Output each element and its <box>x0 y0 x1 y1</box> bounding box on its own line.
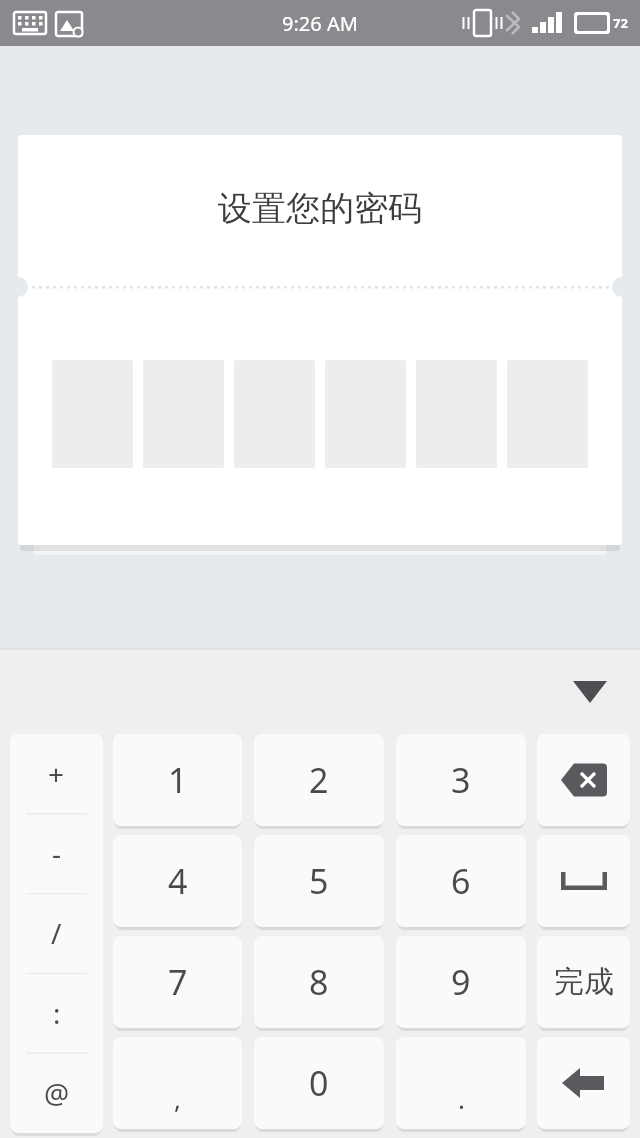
staticText: 72 <box>613 14 628 32</box>
button[interactable]: 5 <box>254 835 384 927</box>
staticText: / <box>51 914 62 952</box>
staticText: 8 <box>309 959 329 1005</box>
button[interactable]: 3 <box>396 734 526 826</box>
staticText: 6 <box>451 858 471 904</box>
staticText: 0 <box>309 1060 329 1106</box>
button[interactable]: / <box>10 893 103 973</box>
button[interactable]: + <box>10 734 103 813</box>
staticText: 完成 <box>554 963 614 1001</box>
staticText: 3 <box>451 757 471 803</box>
button[interactable]: 1 <box>113 734 242 826</box>
button[interactable]: 6 <box>396 835 526 927</box>
staticText: 7 <box>168 959 188 1005</box>
staticText: : <box>53 994 61 1032</box>
staticText: 5 <box>309 858 329 904</box>
staticText: 2 <box>309 757 329 803</box>
button[interactable]: Space <box>537 835 630 927</box>
staticText: - <box>52 834 62 872</box>
staticText: 4 <box>168 858 188 904</box>
button[interactable]: 4 <box>113 835 242 927</box>
button[interactable]: 8 <box>254 936 384 1028</box>
button[interactable]: Backspace <box>537 734 630 826</box>
staticText: + <box>48 755 65 793</box>
button[interactable]: - <box>10 813 103 893</box>
staticText: . <box>458 1081 465 1116</box>
button[interactable]: Return <box>537 1037 630 1129</box>
button[interactable]: @ <box>10 1053 103 1133</box>
staticText: 9:26 AM <box>282 10 358 37</box>
staticText: , <box>174 1081 181 1116</box>
button[interactable]: 9 <box>396 936 526 1028</box>
button[interactable]: 2 <box>254 734 384 826</box>
button[interactable]: Hide keyboard <box>568 670 612 714</box>
staticText: 设置您的密码 <box>218 187 422 230</box>
button[interactable]: , <box>113 1037 242 1129</box>
button[interactable]: 完成 <box>537 936 630 1028</box>
staticText: 9 <box>451 959 471 1005</box>
staticText: 1 <box>168 757 188 803</box>
button[interactable]: 7 <box>113 936 242 1028</box>
button[interactable]: . <box>396 1037 526 1129</box>
button[interactable]: : <box>10 973 103 1053</box>
staticText: @ <box>44 1074 70 1112</box>
button[interactable]: 0 <box>254 1037 384 1129</box>
